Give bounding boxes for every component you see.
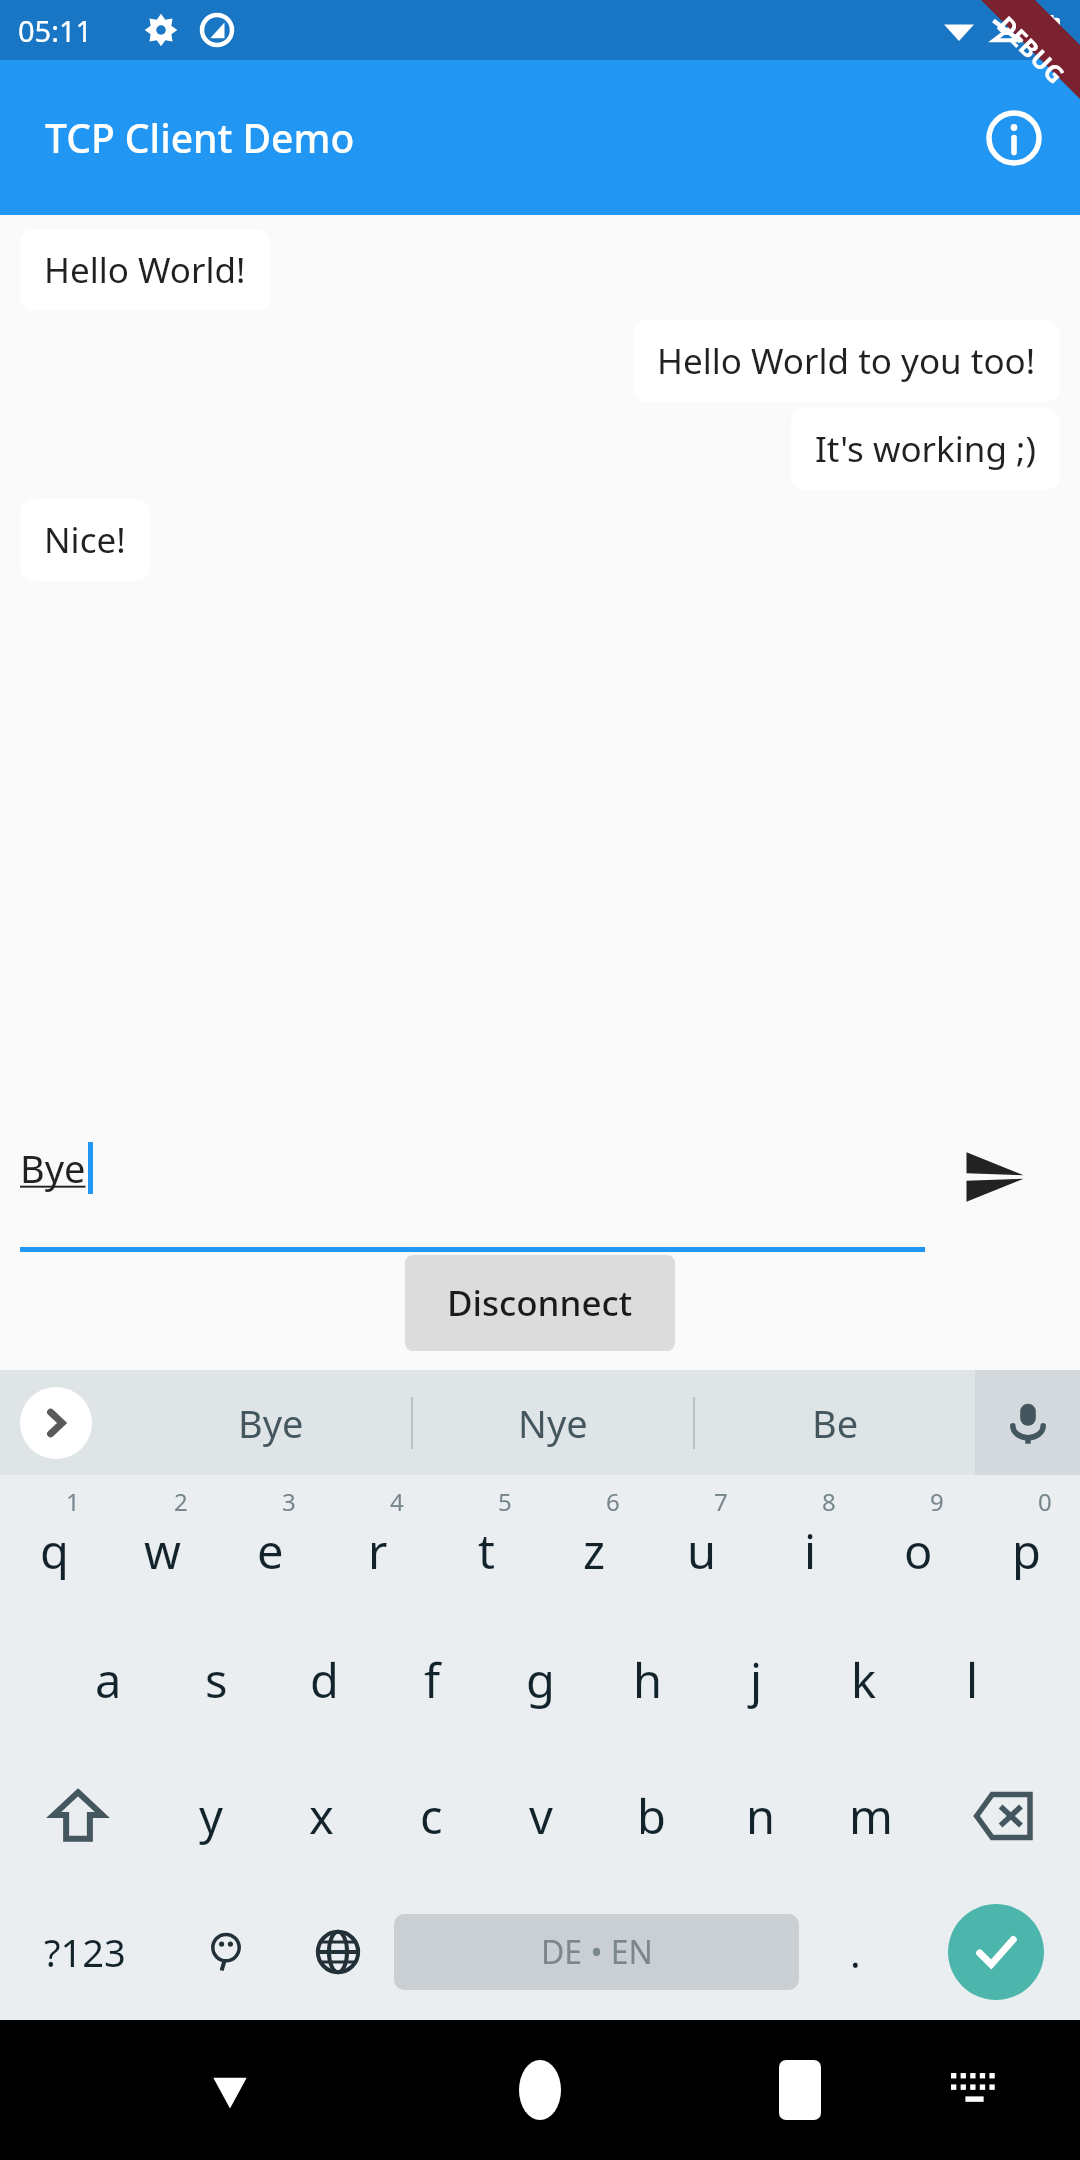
button[interactable]: 5 — [432, 1475, 540, 1612]
button[interactable]: h — [594, 1612, 702, 1748]
staticText: 8 — [822, 1485, 836, 1518]
staticText: w — [144, 1519, 181, 1583]
staticText: o — [904, 1519, 933, 1583]
button[interactable]: Voice input — [975, 1370, 1080, 1475]
button[interactable]: Nye — [413, 1370, 693, 1475]
staticText: Disconnect — [447, 1279, 633, 1327]
staticText: ?123 — [44, 1926, 126, 1978]
button[interactable]: a — [54, 1612, 162, 1748]
staticText: 6 — [606, 1485, 620, 1518]
staticText: d — [310, 1648, 339, 1712]
staticText: a — [95, 1648, 122, 1712]
button[interactable]: y — [155, 1748, 266, 1884]
staticText: r — [368, 1519, 388, 1583]
button[interactable]: 8 — [756, 1475, 864, 1612]
button[interactable]: l — [918, 1612, 1026, 1748]
button[interactable]: Hello World to you too! — [633, 320, 1060, 402]
staticText: 05:11 — [18, 11, 93, 50]
button[interactable]: Nice! — [20, 499, 150, 581]
button[interactable]: k — [810, 1612, 918, 1748]
button[interactable]: Recents — [750, 2040, 850, 2140]
staticText: u — [687, 1519, 717, 1583]
button[interactable]: f — [378, 1612, 486, 1748]
staticText: f — [424, 1648, 441, 1712]
button[interactable]: j — [702, 1612, 810, 1748]
staticText: DE • EN — [541, 1930, 653, 1974]
staticText: y — [199, 1784, 223, 1848]
button[interactable]: Hide keyboard — [180, 2040, 280, 2140]
staticText: 4 — [390, 1485, 404, 1518]
button[interactable]: x — [266, 1748, 376, 1884]
button[interactable]: s — [162, 1612, 270, 1748]
staticText: 9 — [930, 1485, 944, 1518]
staticText: v — [529, 1784, 553, 1848]
staticText: Bye — [20, 1142, 86, 1194]
button[interactable]: Shift — [0, 1748, 155, 1884]
staticText: 2 — [174, 1485, 188, 1518]
button[interactable]: Bye — [20, 1102, 925, 1252]
button[interactable]: Change language — [282, 1884, 394, 2020]
staticText: t — [478, 1519, 495, 1583]
staticText: q — [40, 1519, 69, 1583]
staticText: 0 — [1038, 1485, 1052, 1518]
staticText: DEBUG — [990, 8, 1072, 90]
staticText: x — [309, 1784, 334, 1848]
staticText: j — [750, 1648, 763, 1712]
button[interactable]: . — [799, 1884, 911, 2020]
staticText: TCP Client Demo — [45, 111, 355, 164]
staticText: m — [849, 1784, 893, 1848]
staticText: Hello World to you too! — [657, 337, 1036, 385]
button[interactable]: Disconnect — [405, 1255, 675, 1351]
staticText: e — [257, 1519, 284, 1583]
button[interactable]: 7 — [648, 1475, 756, 1612]
button[interactable]: v — [486, 1748, 596, 1884]
staticText: Bye — [238, 1397, 304, 1449]
staticText: 1 — [66, 1485, 80, 1518]
staticText: i — [804, 1519, 817, 1583]
button[interactable]: d — [270, 1612, 378, 1748]
staticText: Be — [812, 1397, 859, 1449]
button[interactable]: Hello World! — [20, 229, 270, 311]
button[interactable]: 4 — [324, 1475, 432, 1612]
button[interactable]: Home — [490, 2040, 590, 2140]
button[interactable]: Send — [940, 1122, 1050, 1232]
staticText: l — [966, 1648, 979, 1712]
staticText: b — [637, 1784, 666, 1848]
staticText: 3 — [282, 1485, 296, 1518]
button[interactable]: 2 — [108, 1475, 216, 1612]
button[interactable]: b — [596, 1748, 706, 1884]
staticText: It's working ;) — [815, 425, 1036, 473]
button[interactable]: 9 — [864, 1475, 972, 1612]
staticText: c — [420, 1784, 443, 1848]
button[interactable]: Enter — [948, 1904, 1044, 2000]
staticText: Nice! — [44, 516, 126, 564]
button[interactable]: Info — [976, 100, 1052, 176]
button[interactable]: Backspace — [926, 1748, 1080, 1884]
staticText: . — [850, 1925, 861, 1979]
staticText: Nye — [518, 1397, 588, 1449]
staticText: k — [851, 1648, 877, 1712]
button[interactable]: More suggestions — [20, 1387, 92, 1459]
button[interactable]: ?123 — [0, 1884, 170, 2020]
button[interactable]: Bye — [130, 1370, 411, 1475]
button[interactable]: m — [816, 1748, 926, 1884]
staticText: 5 — [498, 1485, 512, 1518]
button[interactable]: It's working ;) — [791, 408, 1060, 490]
button[interactable]: 1 — [0, 1475, 108, 1612]
button[interactable]: Switch keyboard — [930, 2045, 1020, 2135]
button[interactable]: c — [376, 1748, 486, 1884]
button[interactable]: DE • EN — [394, 1914, 799, 1990]
staticText: h — [633, 1648, 663, 1712]
staticText: s — [205, 1648, 228, 1712]
button[interactable]: 3 — [216, 1475, 324, 1612]
button[interactable]: 6 — [540, 1475, 648, 1612]
button[interactable]: Emoji — [170, 1884, 282, 2020]
staticText: Hello World! — [44, 246, 246, 294]
button[interactable]: n — [706, 1748, 816, 1884]
staticText: n — [746, 1784, 776, 1848]
button[interactable]: 0 — [972, 1475, 1080, 1612]
staticText: z — [583, 1519, 606, 1583]
button[interactable]: Be — [695, 1370, 975, 1475]
button[interactable]: g — [486, 1612, 594, 1748]
staticText: 7 — [714, 1485, 728, 1518]
